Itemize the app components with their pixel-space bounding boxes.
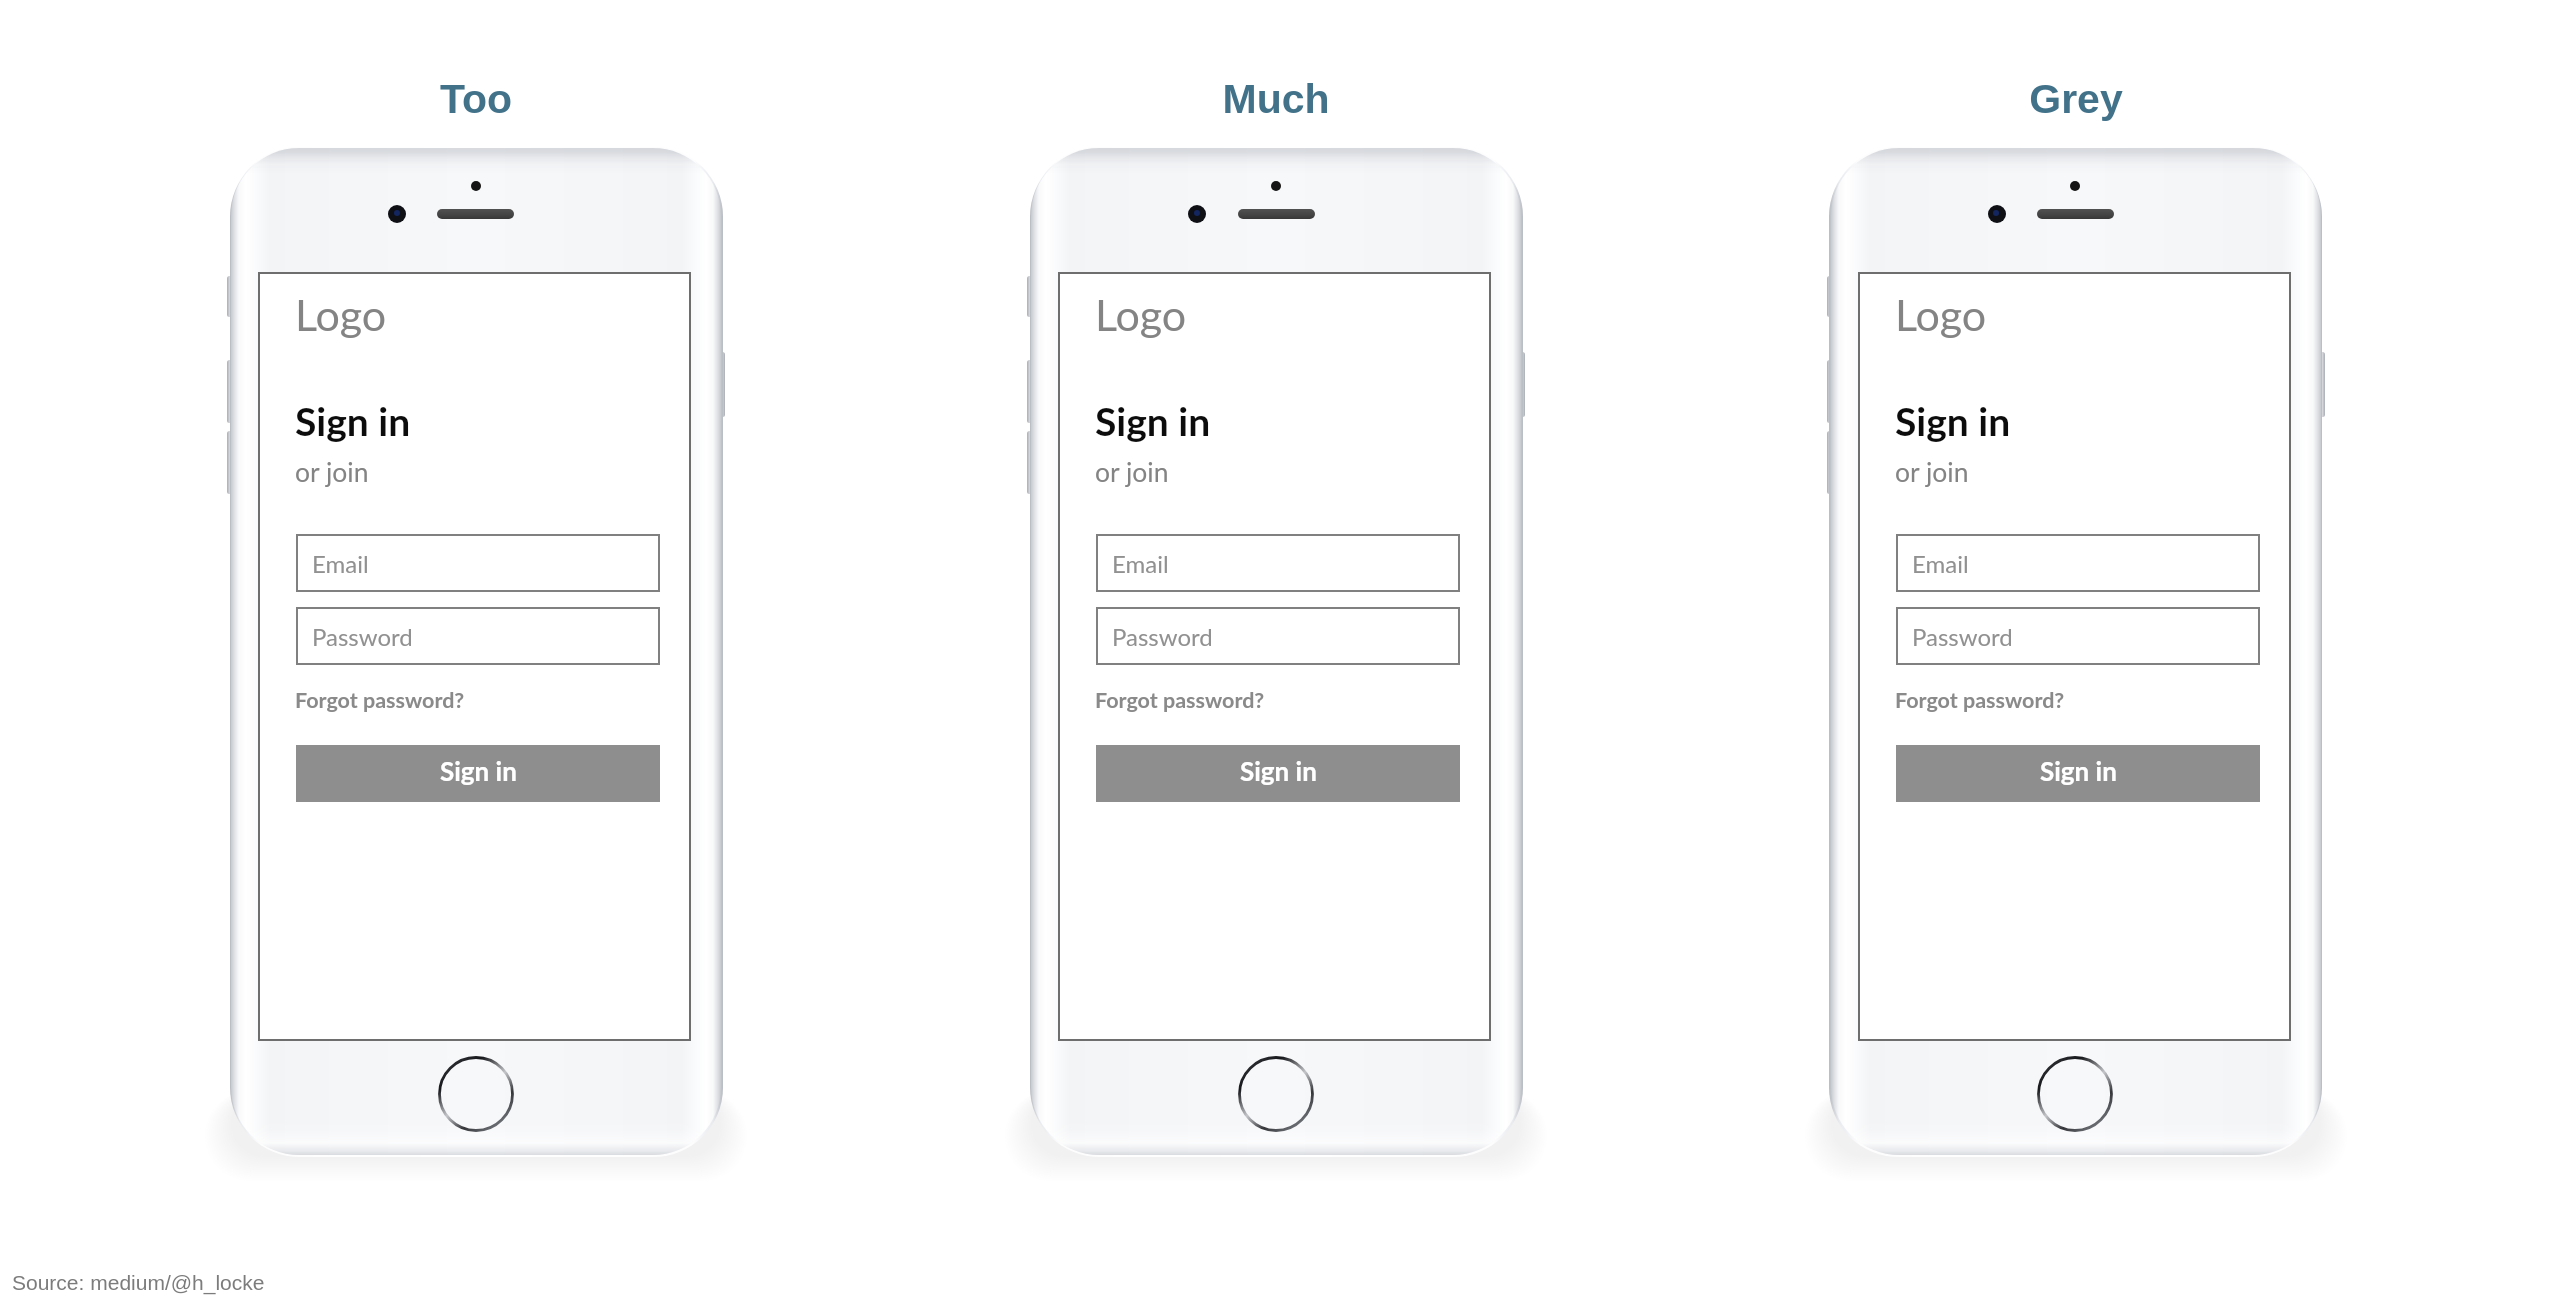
button[interactable]: Power [1519,352,1525,417]
button[interactable]: Sign in [296,745,660,802]
staticText: Sign in [2040,755,2117,786]
staticText: Sign in [1240,755,1317,786]
button[interactable]: or join [1095,456,1169,488]
other: Front camera [388,205,406,223]
staticText: Too [111,76,841,122]
button[interactable]: Silent switch [1027,276,1033,317]
staticText: Email [1912,549,1969,578]
button[interactable]: or join [295,456,369,488]
other: Front camera [1988,205,2006,223]
staticText: Logo [295,289,387,341]
button[interactable]: Volume up [227,360,233,423]
staticText: Sign in [1895,398,2011,445]
staticText: Sign in [295,398,411,445]
staticText: Password [1912,622,2013,651]
staticText: or join [295,456,369,488]
button[interactable]: Sign in [1096,745,1460,802]
button[interactable]: Home [434,1052,518,1136]
button[interactable]: Volume up [1027,360,1033,423]
button[interactable]: Home [1234,1052,1318,1136]
button[interactable]: Forgot password? [295,685,465,715]
staticText: Forgot password? [1095,687,1265,713]
staticText: Grey [1711,76,2441,122]
button[interactable]: or join [1895,456,1969,488]
button[interactable]: Password [1896,607,2260,665]
staticText: Sign in [1095,398,1211,445]
staticText: Password [1112,622,1213,651]
button[interactable]: Power [2319,352,2325,417]
button[interactable]: Power [719,352,725,417]
button[interactable]: Logo [295,289,387,341]
button[interactable]: Password [296,607,660,665]
button[interactable]: Silent switch [1827,276,1833,317]
button[interactable]: Email [1096,534,1460,592]
button[interactable]: Volume down [1827,431,1833,494]
button[interactable]: Forgot password? [1095,685,1265,715]
staticText: Password [312,622,413,651]
other: Front camera [1188,205,1206,223]
staticText: or join [1095,456,1169,488]
staticText: Email [312,549,369,578]
staticText: Logo [1895,289,1987,341]
button[interactable]: Sign in [1896,745,2260,802]
button[interactable]: Home [2033,1052,2117,1136]
button[interactable]: Forgot password? [1895,685,2065,715]
button[interactable]: Logo [1895,289,1987,341]
button[interactable]: Volume up [1827,360,1833,423]
button[interactable]: Email [1896,534,2260,592]
staticText: Much [911,76,1641,122]
button[interactable]: Password [1096,607,1460,665]
staticText: Sign in [440,755,517,786]
staticText: Email [1112,549,1169,578]
button[interactable]: Volume down [1027,431,1033,494]
button[interactable]: Email [296,534,660,592]
button[interactable]: Logo [1095,289,1187,341]
staticText: Forgot password? [295,687,465,713]
button[interactable]: Silent switch [227,276,233,317]
staticText: or join [1895,456,1969,488]
staticText: Logo [1095,289,1187,341]
staticText: Forgot password? [1895,687,2065,713]
staticText: Source: medium/@h_locke [12,1271,265,1294]
button[interactable]: Volume down [227,431,233,494]
